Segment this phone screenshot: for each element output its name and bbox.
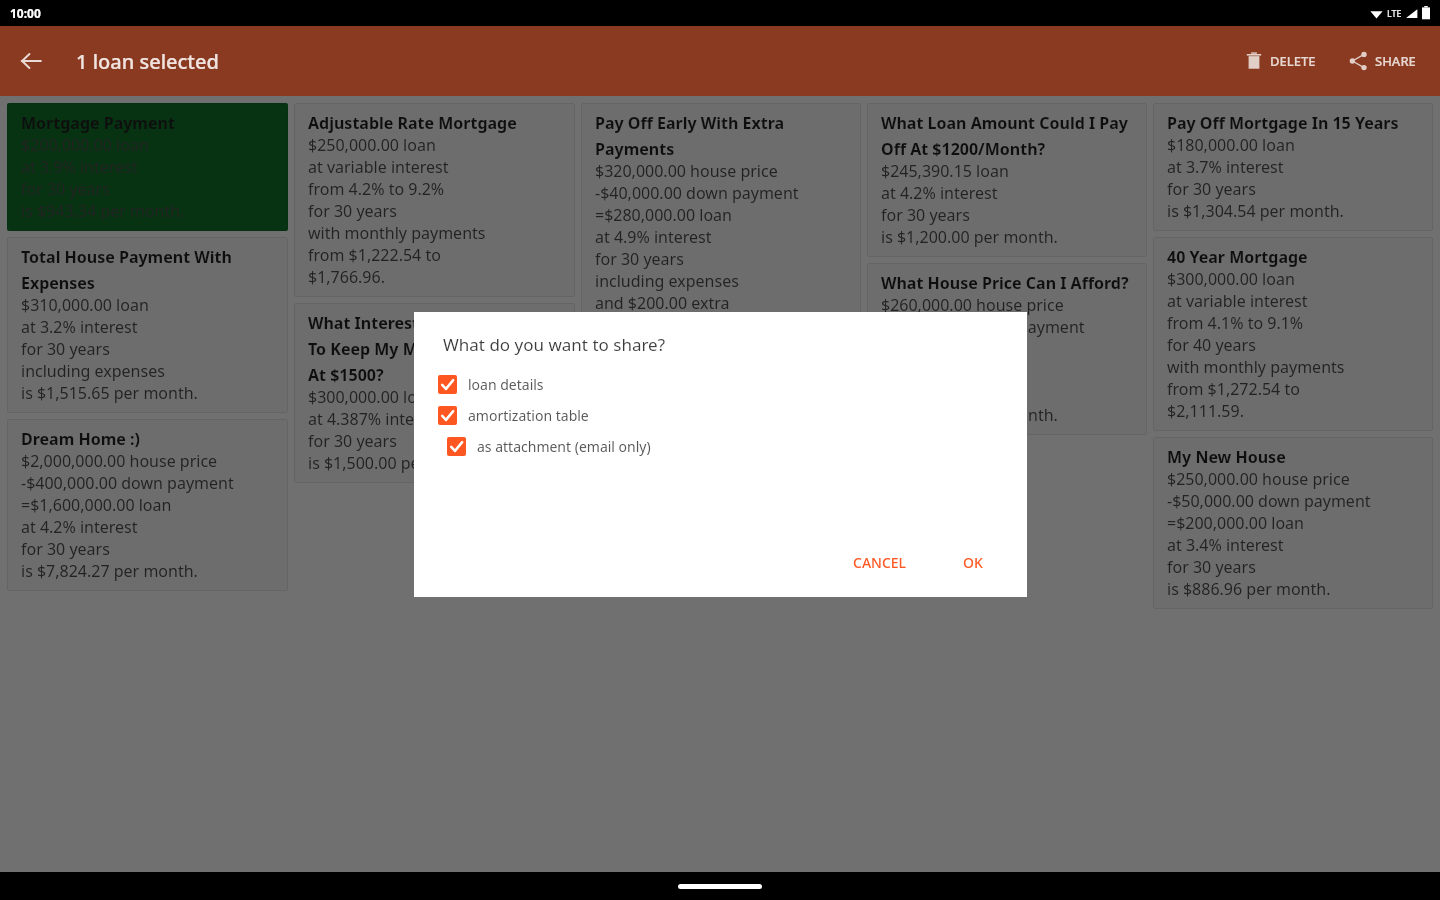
staticText: 10:00 — [10, 5, 41, 21]
button[interactable]: as attachment (email only) — [438, 431, 1027, 462]
button[interactable]: Pay Off Early With Extra Payments — [581, 103, 861, 345]
staticText: Pay Off Early With Extra Payments — [595, 112, 847, 160]
staticText: at 3.2% interest — [21, 316, 138, 338]
button[interactable]: Dream Home :) — [7, 419, 288, 591]
staticText: 1 loan selected — [76, 48, 219, 75]
staticText: $200,000.00 loan — [21, 134, 149, 156]
staticText: for 30 years — [595, 426, 684, 448]
staticText: $300,000.00 loan — [308, 386, 436, 408]
staticText: is $1,304.54 per month. — [1167, 200, 1344, 222]
staticText: What House Price Can I Afford? — [881, 272, 1129, 294]
staticText: LTE — [1387, 7, 1402, 19]
staticText: for 30 years — [1167, 178, 1256, 200]
button[interactable]: OK — [949, 544, 997, 581]
staticText: is $1,500.00 per month. — [595, 448, 772, 470]
button[interactable]: What Loan Amount Could I Pay Off At $120… — [867, 103, 1147, 257]
staticText: $250,000.00 house price — [1167, 468, 1350, 490]
staticText: $2,111.59. — [1167, 400, 1244, 422]
staticText: -$50,000.00 down payment — [1167, 490, 1371, 512]
staticText: for 40 years — [1167, 334, 1256, 356]
staticText: SHARE — [1375, 52, 1416, 70]
staticText: with monthly payments — [308, 222, 486, 244]
button[interactable]: Pay Off Mortgage In 15 Years — [1153, 103, 1433, 231]
staticText: $245,390.15 loan — [881, 160, 1009, 182]
staticText: at 4.9% interest — [595, 226, 712, 248]
button[interactable]: What Interest Rate Do I Need To Keep My … — [294, 303, 575, 483]
staticText: from 4.1% to 9.1% — [1167, 312, 1304, 334]
staticText: What Interest Rate Do I Need To Keep My … — [308, 312, 561, 386]
staticText: at 3.7% interest — [1167, 156, 1284, 178]
staticText: Total House Payment With Expenses — [21, 246, 274, 294]
staticText: -$40,000.00 down payment — [595, 182, 799, 204]
staticText: $180,000.00 loan — [1167, 134, 1295, 156]
staticText: OK — [963, 553, 983, 572]
staticText: $320,000.00 house price — [595, 160, 778, 182]
staticText: =$1,600,000.00 loan — [21, 494, 172, 516]
button[interactable]: SHARE — [1338, 37, 1426, 85]
staticText: for 30 years — [21, 338, 110, 360]
staticText: including expenses — [21, 360, 165, 382]
staticText: is $1,200.00 per month. — [881, 226, 1058, 248]
staticText: -$400,000.00 down payment — [21, 472, 234, 494]
button[interactable]: DELETE — [1235, 38, 1326, 84]
button[interactable]: loan details — [438, 369, 1027, 400]
staticText: is $7,824.27 per month. — [21, 560, 198, 582]
staticText: for 30 years — [881, 204, 970, 226]
staticText: for 30 years — [308, 430, 397, 452]
staticText: Adjustable Rate Mortgage — [308, 112, 517, 134]
staticText: at variable interest — [308, 156, 449, 178]
staticText: $1,766.96. — [308, 266, 385, 288]
staticText: for 30 years — [21, 538, 110, 560]
staticText: at 3.4% interest — [1167, 534, 1284, 556]
staticText: from 4.2% to 9.2% — [308, 178, 445, 200]
staticText: What Loan Amount Could I Pay Off At $120… — [881, 112, 1133, 160]
staticText: is $1,050.00 per month. — [881, 404, 1058, 426]
staticText: for 30 years — [595, 248, 684, 270]
staticText: and $200.00 extra — [595, 292, 730, 314]
staticText: $300,000.00 loan — [1167, 268, 1295, 290]
staticText: DELETE — [1270, 52, 1316, 70]
staticText: is $1,500.00 per month. — [308, 452, 485, 474]
staticText: Dream Home :) — [21, 428, 140, 450]
staticText: My New House — [1167, 446, 1286, 468]
button[interactable]: What House Price Can I Afford? — [867, 263, 1147, 435]
staticText: $260,000.00 house price — [881, 294, 1064, 316]
button[interactable]: CANCEL — [839, 544, 921, 581]
button[interactable]: Back — [0, 30, 62, 92]
staticText: for 30 years — [1167, 556, 1256, 578]
button[interactable]: Total House Payment With Expenses — [7, 237, 288, 413]
button[interactable]: Adjustable Rate Mortgage — [294, 103, 575, 297]
staticText: CANCEL — [853, 553, 907, 572]
staticText: from $1,272.54 to — [1167, 378, 1300, 400]
staticText: with monthly payments — [1167, 356, 1345, 378]
staticText: is $886.96 per month. — [1167, 578, 1331, 600]
staticText: from $1,222.54 to — [308, 244, 441, 266]
staticText: for 30 years — [308, 200, 397, 222]
button[interactable]: Lower Interest Rate — [581, 351, 861, 479]
staticText: $310,000.00 loan — [21, 294, 149, 316]
staticText: What do you want to share? — [443, 333, 666, 356]
staticText: =$280,000.00 loan — [595, 204, 732, 226]
staticText: -$40,000.00 down payment — [881, 316, 1085, 338]
staticText: at 4.2% interest — [881, 182, 998, 204]
staticText: loan details — [468, 375, 544, 394]
staticText: at 4.2% interest — [21, 516, 138, 538]
button[interactable]: 40 Year Mortgage — [1153, 237, 1433, 431]
button[interactable]: My New House — [1153, 437, 1433, 609]
staticText: =$200,000.00 loan — [1167, 512, 1304, 534]
button[interactable]: amortization table — [438, 400, 1027, 431]
staticText: at 3.9% interest — [21, 156, 138, 178]
staticText: Mortgage Payment — [21, 112, 175, 134]
button[interactable]: Mortgage Payment — [7, 103, 288, 231]
staticText: 40 Year Mortgage — [1167, 246, 1308, 268]
staticText: is $1,515.65 per month. — [21, 382, 198, 404]
staticText: at variable interest — [1167, 290, 1308, 312]
staticText: is $943.34 per month. — [21, 200, 185, 222]
staticText: including expenses — [595, 270, 739, 292]
